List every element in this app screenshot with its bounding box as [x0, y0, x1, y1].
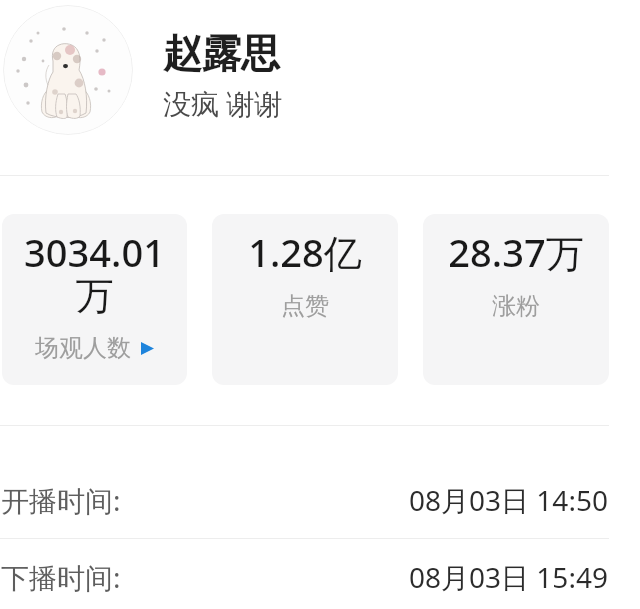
button[interactable]: 28.37万 — [423, 214, 609, 385]
staticText: 点赞 — [281, 291, 329, 321]
staticText: 涨粉 — [492, 291, 540, 321]
staticText: 08月03日 14:50 — [409, 481, 608, 519]
staticText: 3034.01万 — [22, 226, 167, 320]
staticText: 赵露思 — [163, 29, 280, 78]
staticText: 开播时间: — [1, 481, 121, 519]
staticText: 28.37万 — [448, 226, 584, 278]
staticText: 下播时间: — [1, 558, 121, 596]
button[interactable]: 3034.01万 — [2, 214, 187, 385]
button[interactable]: 1.28亿 — [212, 214, 398, 385]
button[interactable]: Profile avatar — [0, 0, 640, 140]
staticText: 1.28亿 — [248, 226, 362, 278]
other: Profile avatar — [3, 5, 133, 135]
staticText: 08月03日 15:49 — [409, 558, 608, 596]
staticText: 没疯 谢谢 — [163, 84, 283, 122]
button[interactable]: 下播时间: — [1, 539, 608, 609]
button[interactable]: 开播时间: — [1, 462, 608, 538]
staticText: 场观人数 — [35, 333, 131, 363]
